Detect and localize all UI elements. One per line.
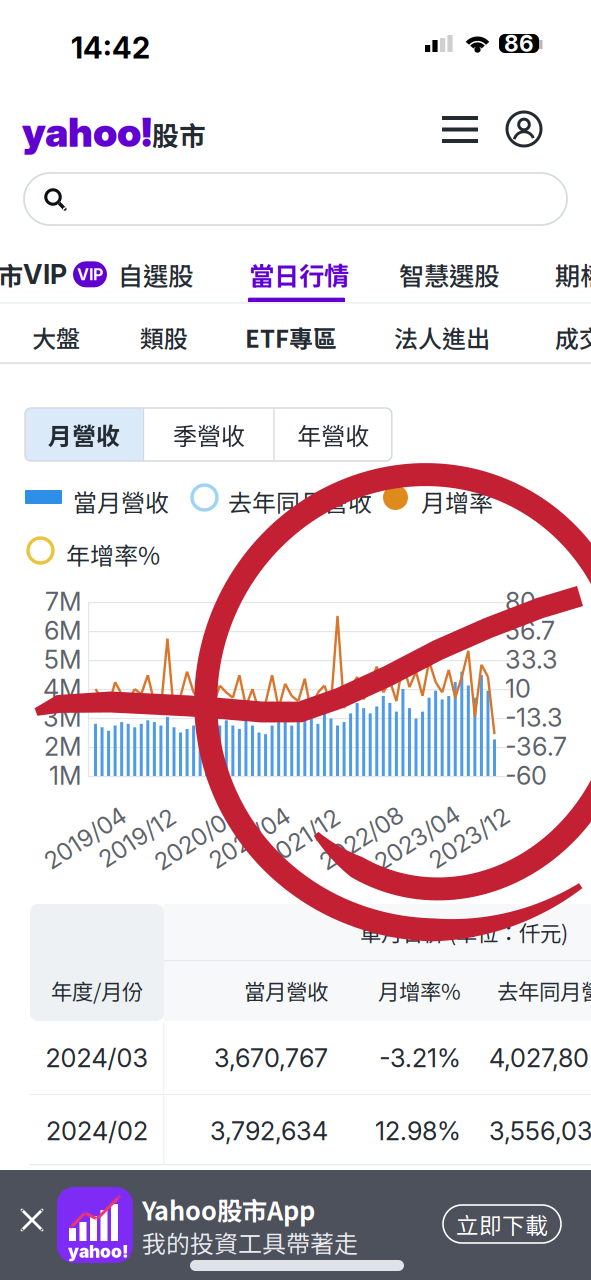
staticText: 2024/02: [46, 1116, 148, 1146]
staticText: 1M: [49, 760, 82, 791]
staticText: 單月合併 (單位：仟元): [360, 917, 568, 947]
button[interactable]: Menu: [426, 98, 494, 160]
staticText: 2024/03: [45, 1043, 148, 1073]
staticText: 6M: [44, 615, 82, 646]
staticText: 2023/12: [424, 823, 514, 852]
staticText: 12.98%: [375, 1116, 461, 1146]
staticText: 14:42: [71, 30, 150, 65]
button[interactable]: 年營收: [275, 408, 392, 461]
staticText: 86: [504, 30, 534, 57]
button[interactable]: 季營收: [144, 408, 273, 461]
staticText: 2021/12: [259, 823, 344, 852]
staticText: 2019/12: [94, 823, 180, 852]
staticText: 市: [0, 256, 23, 293]
staticText: 智慧選股: [399, 256, 499, 293]
staticText: 季營收: [173, 417, 245, 452]
staticText: 期權: [555, 256, 591, 293]
button[interactable]: Search: [0, 173, 591, 225]
staticText: 我的投資工具帶著走: [142, 1225, 358, 1260]
button[interactable]: 立即下載: [443, 1205, 561, 1243]
button[interactable]: 法人進出: [388, 315, 496, 360]
staticText: 4,027,80: [489, 1043, 589, 1073]
staticText: 當月營收: [244, 975, 328, 1006]
button[interactable]: 當日行情: [243, 251, 355, 303]
staticText: 自選股: [118, 256, 193, 293]
button[interactable]: Close banner: [6, 1194, 58, 1246]
staticText: 2021/04: [204, 823, 295, 852]
staticText: ETF專區: [245, 320, 337, 355]
staticText: 去年同月營收: [228, 484, 372, 519]
button[interactable]: Account: [491, 96, 557, 162]
button[interactable]: ETF專區: [239, 315, 343, 360]
button[interactable]: 類股: [134, 315, 194, 360]
staticText: 月增率%: [378, 975, 461, 1006]
staticText: 4M: [43, 673, 82, 704]
staticText: 去年同月營: [497, 975, 591, 1006]
staticText: 成交: [555, 320, 591, 355]
staticText: 年營收: [297, 417, 369, 452]
staticText: 當月營收: [73, 484, 169, 519]
staticText: 2022/08: [314, 823, 409, 852]
staticText: 月營收: [48, 417, 120, 452]
staticText: 2020/08: [149, 823, 245, 852]
staticText: 10: [505, 673, 531, 704]
staticText: 56.7: [505, 615, 555, 646]
staticText: 3M: [43, 702, 82, 733]
staticText: 7M: [45, 586, 82, 617]
staticText: 33.3: [505, 644, 558, 675]
staticText: yahoo!: [68, 1241, 129, 1262]
staticText: 年度/月份: [51, 975, 143, 1006]
staticText: 2019/04: [39, 823, 131, 852]
staticText: 80: [505, 586, 536, 617]
button[interactable]: 自選股: [112, 251, 199, 298]
staticText: 3,792,634: [210, 1116, 328, 1146]
staticText: Yahoo股市App: [142, 1191, 315, 1228]
staticText: 法人進出: [394, 320, 490, 355]
button[interactable]: 期權: [549, 251, 591, 298]
staticText: 類股: [140, 320, 188, 355]
staticText: -13.3: [505, 702, 563, 733]
staticText: 5M: [44, 644, 82, 675]
button[interactable]: 大盤: [26, 315, 86, 360]
staticText: 大盤: [32, 320, 80, 355]
staticText: -36.7: [505, 731, 567, 762]
staticText: 2M: [44, 731, 82, 762]
staticText: 月增率: [421, 484, 493, 519]
staticText: 年增率%: [66, 537, 160, 572]
staticText: yahoo!: [22, 108, 152, 156]
staticText: 股市: [152, 115, 206, 154]
staticText: 當日行情: [249, 256, 349, 293]
button[interactable]: 月營收: [25, 408, 143, 461]
staticText: 3,670,767: [214, 1043, 328, 1073]
staticText: 3,556,03: [489, 1116, 591, 1146]
staticText: 2023/04: [369, 823, 465, 852]
button[interactable]: 智慧選股: [393, 251, 505, 298]
button[interactable]: 成交: [549, 315, 591, 360]
staticText: -60: [505, 760, 547, 791]
staticText: 立即下載: [456, 1208, 548, 1240]
staticText: VIP: [23, 258, 67, 290]
button[interactable]: 市: [0, 251, 113, 298]
staticText: -3.21%: [379, 1043, 461, 1073]
staticText: VIP: [77, 265, 103, 284]
